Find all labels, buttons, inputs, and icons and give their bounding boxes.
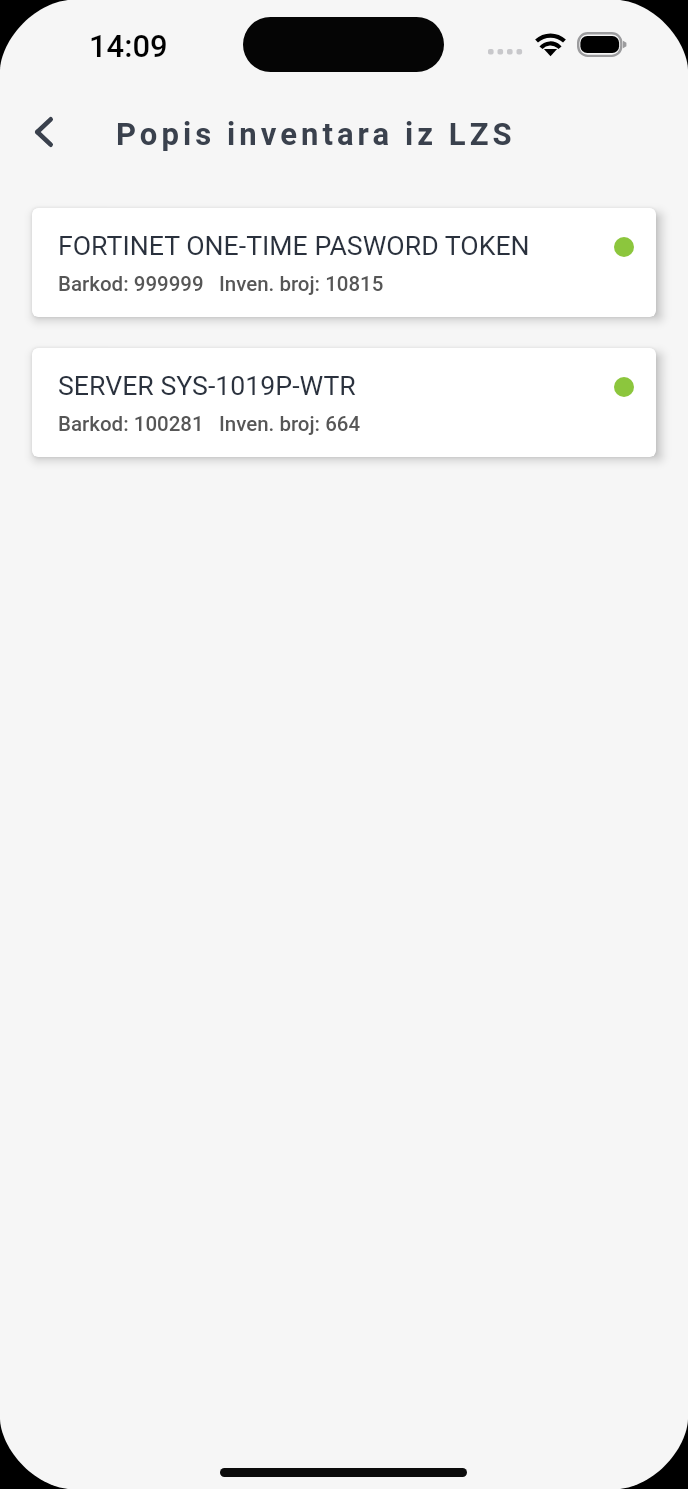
staticText: Barkod: 100281 Inven. broj: 664 xyxy=(58,412,361,436)
staticText: Barkod: 999999 Inven. broj: 10815 xyxy=(58,272,384,296)
staticText: FORTINET ONE-TIME PASWORD TOKEN xyxy=(58,230,530,261)
button[interactable]: Back xyxy=(15,103,73,161)
staticText: Popis inventara iz LZS xyxy=(116,116,516,152)
button[interactable]: SERVER SYS-1019P-WTR xyxy=(32,348,656,457)
staticText: 14:09 xyxy=(89,28,168,64)
button[interactable]: FORTINET ONE-TIME PASWORD TOKEN xyxy=(32,208,656,317)
staticText: SERVER SYS-1019P-WTR xyxy=(58,370,356,401)
